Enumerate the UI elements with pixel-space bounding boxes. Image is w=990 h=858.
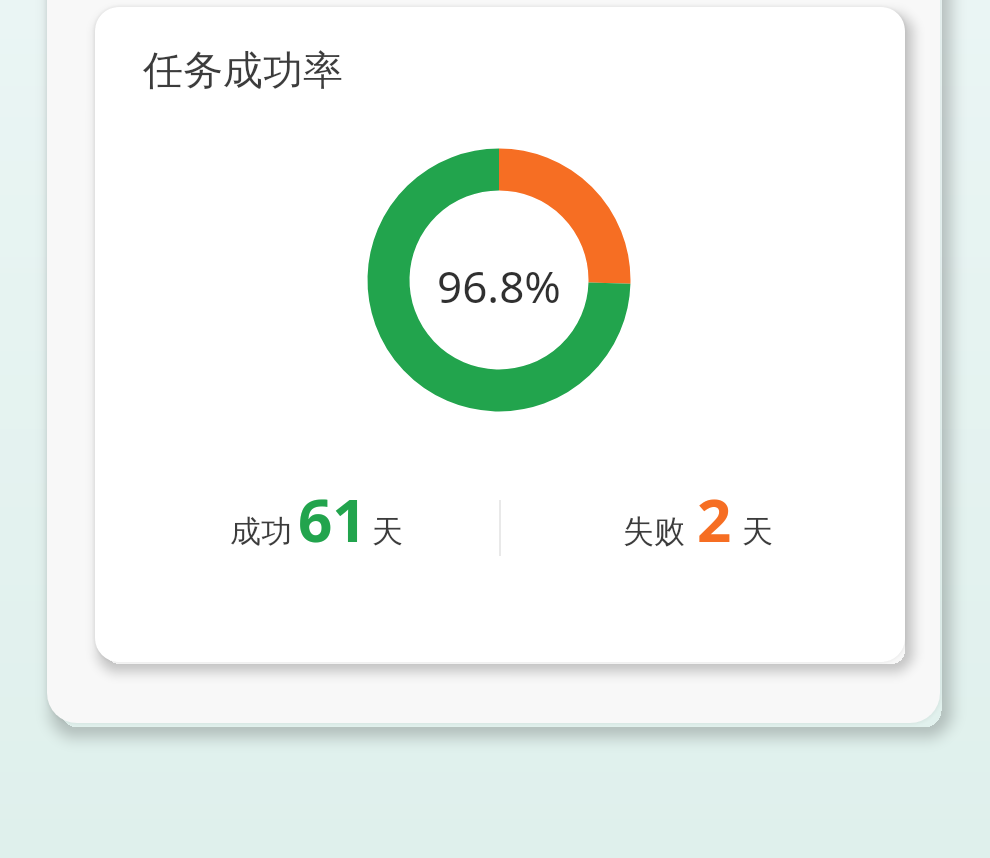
staticText: 2 [697,478,732,560]
button[interactable]: 任务成功率 [95,7,905,662]
staticText: 61 [298,478,367,560]
staticText: 天 [742,512,773,551]
staticText: 失败 [623,512,685,551]
staticText: 天 [372,512,403,551]
staticText: 成功 [230,512,292,551]
staticText: 96.8% [437,256,561,316]
staticText: 任务成功率 [143,45,343,95]
